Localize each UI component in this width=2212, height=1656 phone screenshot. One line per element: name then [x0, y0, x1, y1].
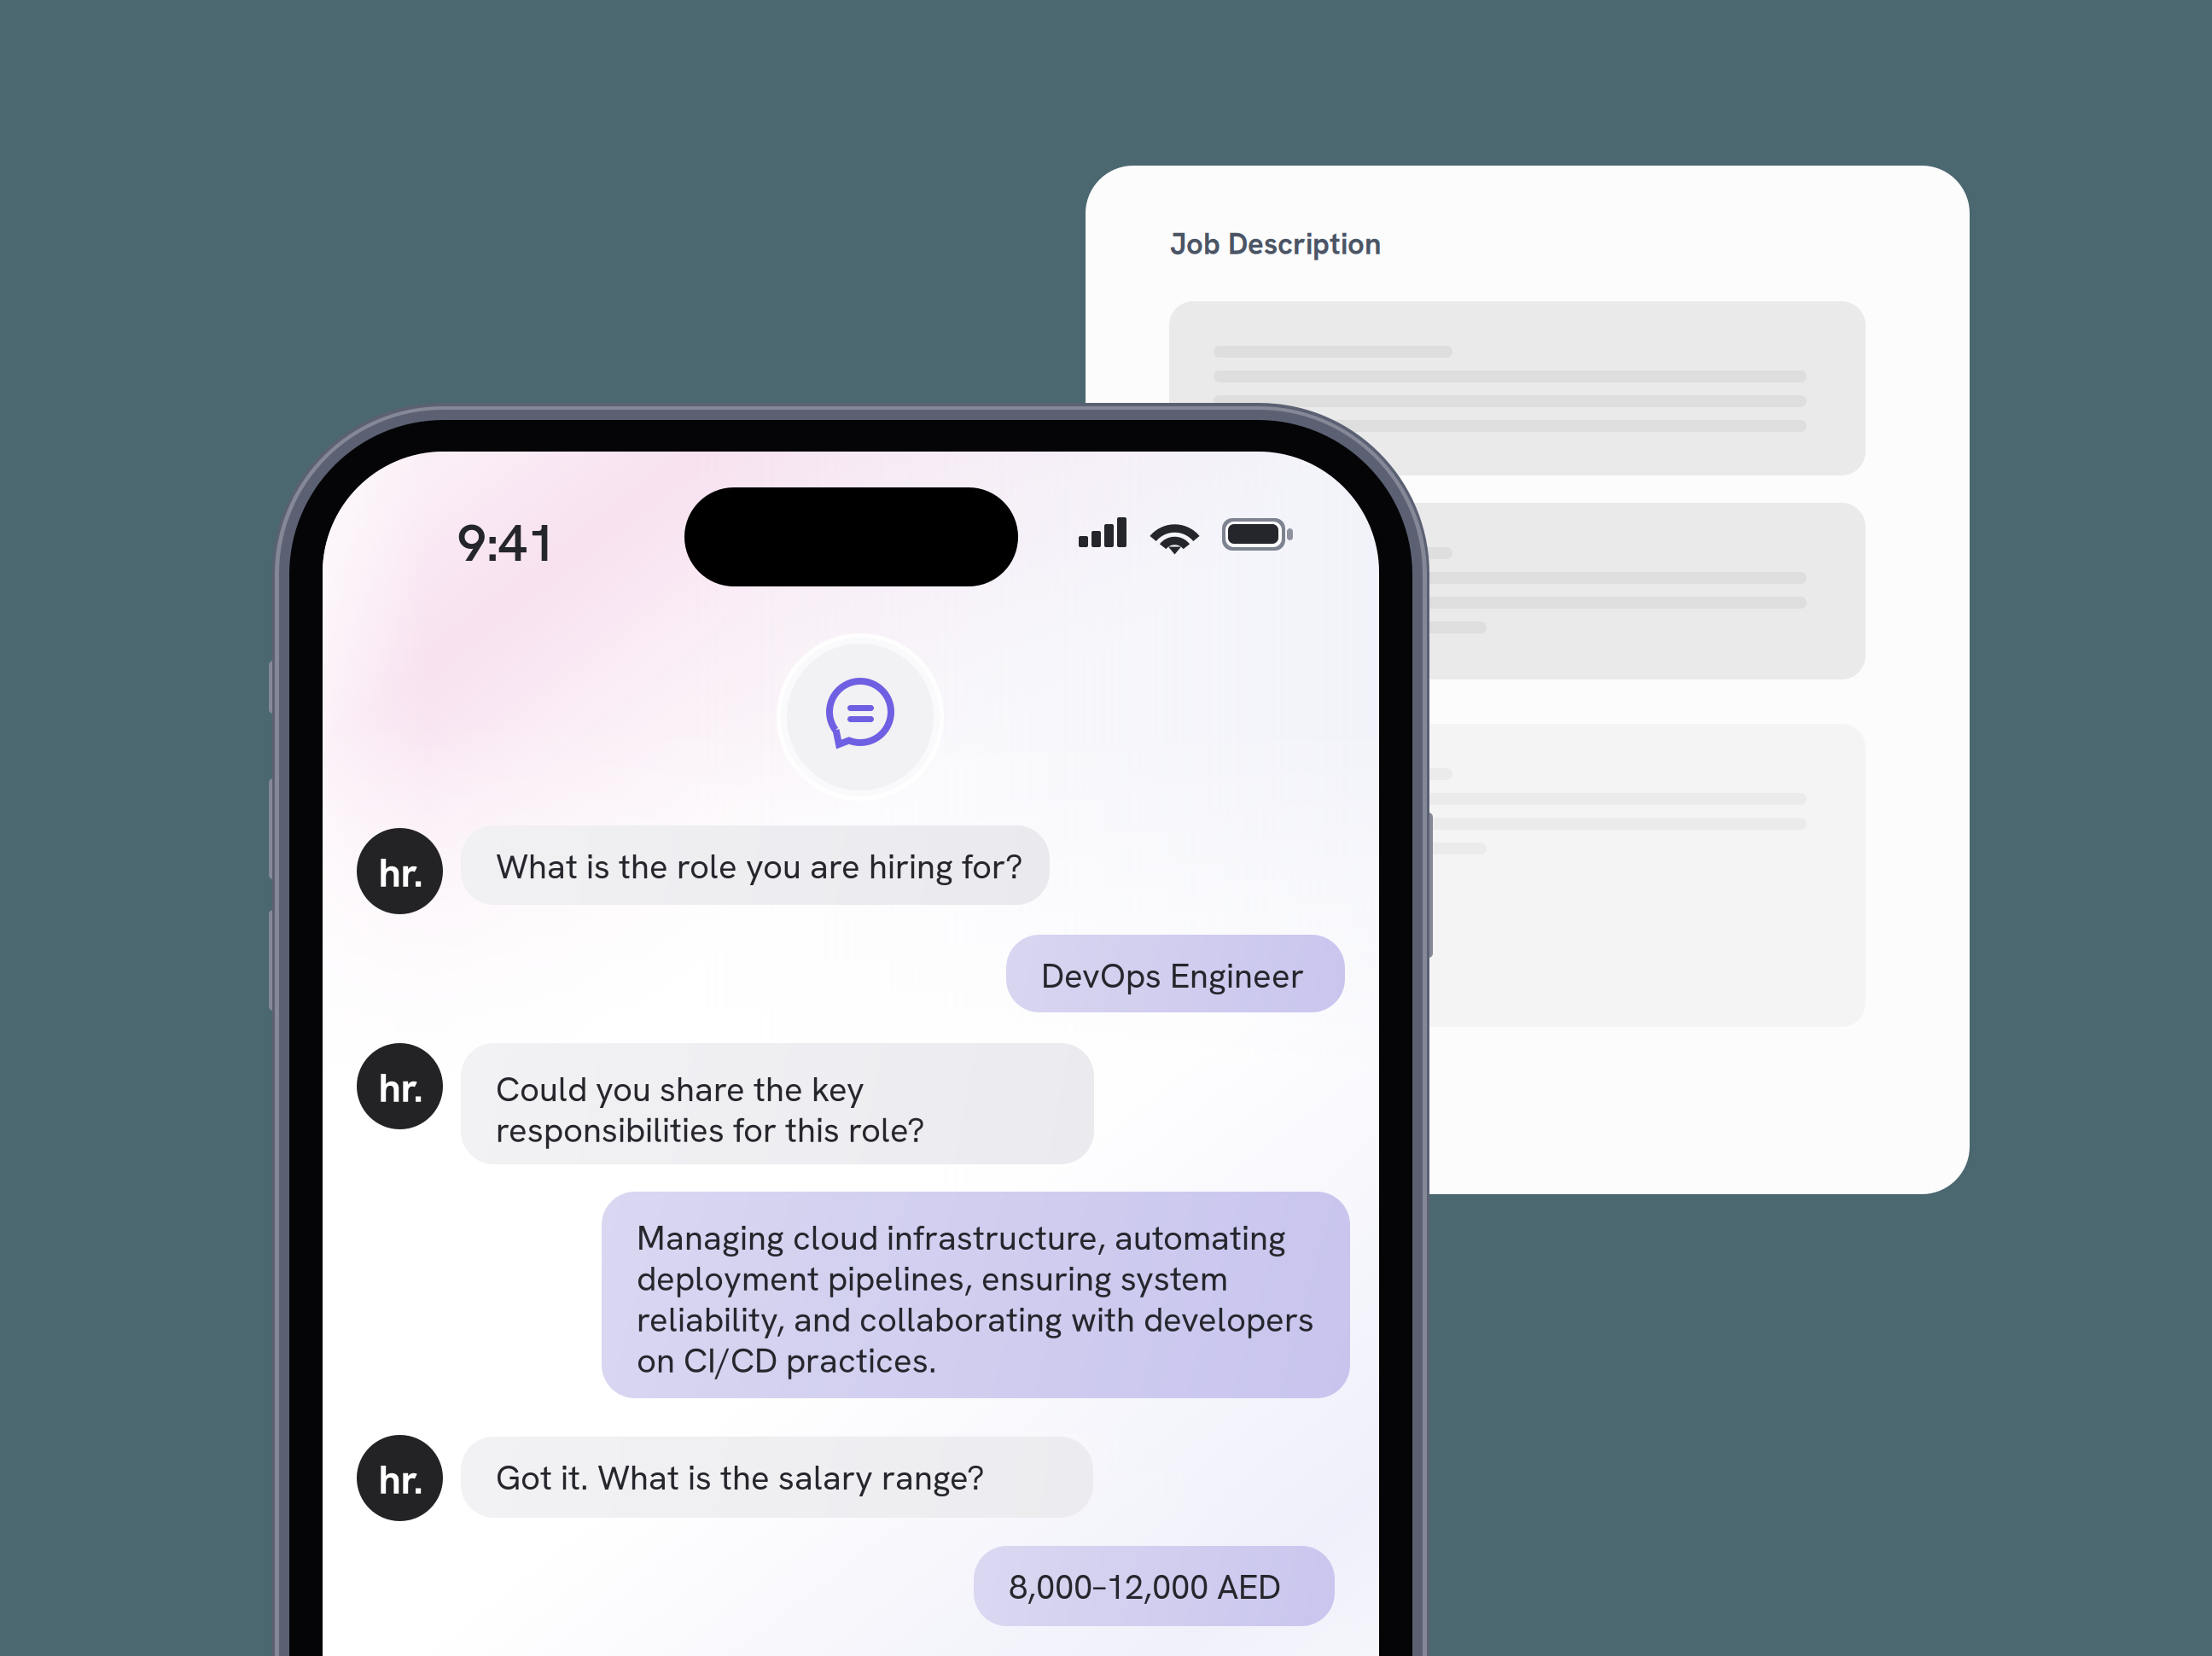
button[interactable]: DevOps Engineer: [1006, 935, 1345, 1012]
staticText: hr.: [378, 1454, 423, 1506]
staticText: hr.: [378, 1062, 423, 1114]
staticText: 8,000–12,000 AED: [1009, 1566, 1281, 1607]
button[interactable]: Got it. What is the salary range?: [461, 1437, 1093, 1518]
staticText: DevOps Engineer: [1041, 955, 1304, 996]
staticText: Could you share the key responsibilities…: [496, 1069, 925, 1151]
staticText: Managing cloud infrastructure, automatin…: [637, 1217, 1314, 1381]
staticText: hr.: [378, 847, 423, 899]
button[interactable]: Managing cloud infrastructure, automatin…: [602, 1192, 1350, 1398]
staticText: What is the role you are hiring for?: [496, 846, 1023, 887]
button[interactable]: 8,000–12,000 AED: [974, 1546, 1335, 1626]
button[interactable]: Could you share the key responsibilities…: [461, 1043, 1094, 1164]
staticText: Job Description: [1170, 224, 1382, 263]
staticText: Got it. What is the salary range?: [496, 1457, 985, 1498]
staticText: 9:41: [457, 510, 556, 576]
button[interactable]: What is the role you are hiring for?: [461, 825, 1050, 905]
